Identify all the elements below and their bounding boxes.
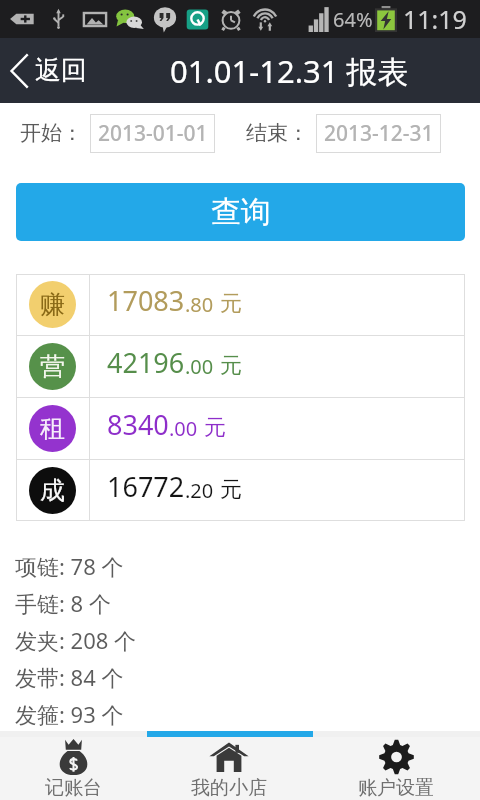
staticText: 11:19 [403,2,467,36]
button[interactable]: 查询 [16,183,465,241]
staticText: 16772 [107,468,185,505]
staticText: 返回 [35,54,87,87]
staticText: 64% [333,6,373,33]
staticText: 8340 [107,406,169,443]
staticText: .00 [185,353,214,380]
staticText: 发箍: 93 个 [15,699,124,729]
button[interactable]: 账户设置 [312,737,480,800]
staticText: 元 [220,290,242,318]
button[interactable]: 成 [16,460,465,521]
staticText: 2013-12-31 [324,119,434,148]
staticText: 42196 [107,344,185,381]
staticText: .80 [185,291,214,318]
staticText: 手链: 8 个 [15,588,111,618]
staticText: 记账台 [45,776,102,800]
button[interactable]: 2013-01-01 [90,114,215,153]
button[interactable]: 2013-12-31 [316,114,441,153]
staticText: 17083 [107,282,185,319]
staticText: 2013-01-01 [98,119,208,148]
button[interactable]: 我的小店 [146,737,312,800]
staticText: 开始： [20,120,83,146]
staticText: 账户设置 [358,776,434,800]
staticText: .20 [185,477,214,504]
button[interactable]: 记账台 [0,737,146,800]
staticText: 结束： [246,120,309,146]
staticText: 赚 [40,289,65,320]
staticText: .00 [169,415,198,442]
staticText: 我的小店 [191,776,267,800]
staticText: 查询 [211,193,271,231]
staticText: 元 [220,352,242,380]
staticText: 成 [40,475,65,506]
staticText: 发夹: 208 个 [15,625,137,655]
staticText: 项链: 78 个 [15,551,124,581]
staticText: 01.01-12.31 报表 [170,50,409,92]
staticText: 租 [40,413,65,444]
staticText: 发带: 84 个 [15,662,124,692]
button[interactable]: 租 [16,398,465,459]
staticText: 营 [40,351,65,382]
button[interactable]: 赚 [16,274,465,335]
button[interactable]: 返回 [0,38,95,103]
button[interactable]: 营 [16,336,465,397]
staticText: 元 [204,414,226,442]
staticText: 元 [220,476,242,504]
